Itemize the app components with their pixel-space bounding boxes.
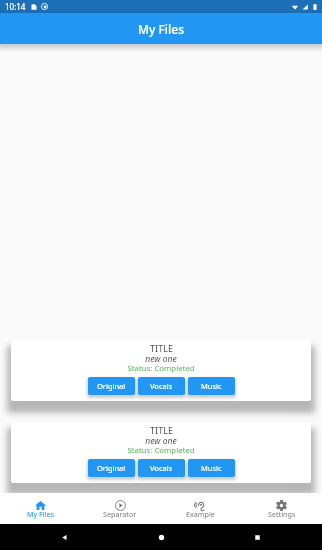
staticText: new one: [145, 353, 177, 363]
button[interactable]: Music: [188, 459, 235, 477]
button[interactable]: Vocals: [138, 459, 185, 477]
staticText: My Files: [27, 509, 54, 519]
staticText: Settings: [268, 509, 296, 519]
staticText: Vocals: [150, 463, 173, 473]
staticText: Vocals: [150, 381, 173, 391]
staticText: Original: [97, 463, 126, 473]
staticText: Status: Completed: [127, 445, 195, 455]
button[interactable]: Example: [160, 493, 241, 524]
staticText: Status: Completed: [127, 363, 195, 373]
staticText: My Files: [138, 21, 185, 37]
button[interactable]: Original: [88, 459, 135, 477]
staticText: TITLE: [150, 342, 173, 353]
staticText: TITLE: [150, 424, 173, 435]
button[interactable]: Home: [157, 533, 166, 542]
staticText: Separator: [103, 509, 137, 519]
button[interactable]: Music: [188, 377, 235, 395]
button[interactable]: Back: [60, 533, 69, 542]
staticText: 10:14: [5, 1, 26, 12]
button[interactable]: TITLE: [11, 340, 311, 401]
button[interactable]: Recents: [253, 533, 262, 542]
button[interactable]: Original: [88, 377, 135, 395]
staticText: new one: [145, 435, 177, 445]
staticText: Example: [186, 509, 215, 519]
staticText: Original: [97, 381, 126, 391]
button[interactable]: Vocals: [138, 377, 185, 395]
button[interactable]: My Files: [0, 13, 322, 44]
staticText: Music: [201, 381, 222, 391]
button[interactable]: TITLE: [11, 422, 311, 483]
staticText: Music: [201, 463, 222, 473]
button[interactable]: My Files: [0, 493, 80, 524]
button[interactable]: Separator: [80, 493, 160, 524]
button[interactable]: Settings: [241, 493, 322, 524]
